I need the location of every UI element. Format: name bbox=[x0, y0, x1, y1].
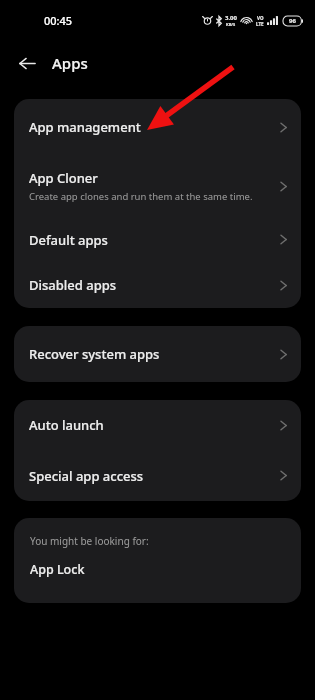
staticText: Recover system apps bbox=[29, 345, 160, 363]
staticText: 96 bbox=[289, 17, 296, 25]
button[interactable]: App Cloner bbox=[14, 155, 301, 217]
staticText: You might be looking for: bbox=[30, 534, 149, 548]
button[interactable]: App Lock bbox=[14, 548, 301, 590]
staticText: App Cloner bbox=[29, 169, 98, 187]
button[interactable]: Default apps bbox=[14, 217, 301, 262]
staticText: Special app access bbox=[29, 467, 144, 485]
staticText: App management bbox=[29, 118, 141, 136]
button[interactable]: Back bbox=[11, 47, 43, 79]
staticText: Auto launch bbox=[29, 416, 104, 434]
staticText: Disabled apps bbox=[29, 276, 117, 294]
staticText: Create app clones and run them at the sa… bbox=[29, 190, 253, 203]
button[interactable]: Recover system apps bbox=[14, 326, 301, 382]
staticText: Apps bbox=[52, 53, 88, 73]
staticText: 00:45 bbox=[44, 13, 73, 28]
staticText: App Lock bbox=[30, 561, 85, 578]
button[interactable]: App management bbox=[14, 99, 301, 155]
staticText: 3.00 bbox=[225, 14, 237, 22]
button[interactable]: Auto launch bbox=[14, 400, 301, 450]
staticText: VO bbox=[257, 15, 264, 21]
staticText: KB/S bbox=[226, 22, 236, 27]
staticText: LTE bbox=[256, 21, 264, 27]
button[interactable]: Disabled apps bbox=[14, 262, 301, 308]
button[interactable]: Special app access bbox=[14, 450, 301, 501]
staticText: Default apps bbox=[29, 231, 108, 249]
